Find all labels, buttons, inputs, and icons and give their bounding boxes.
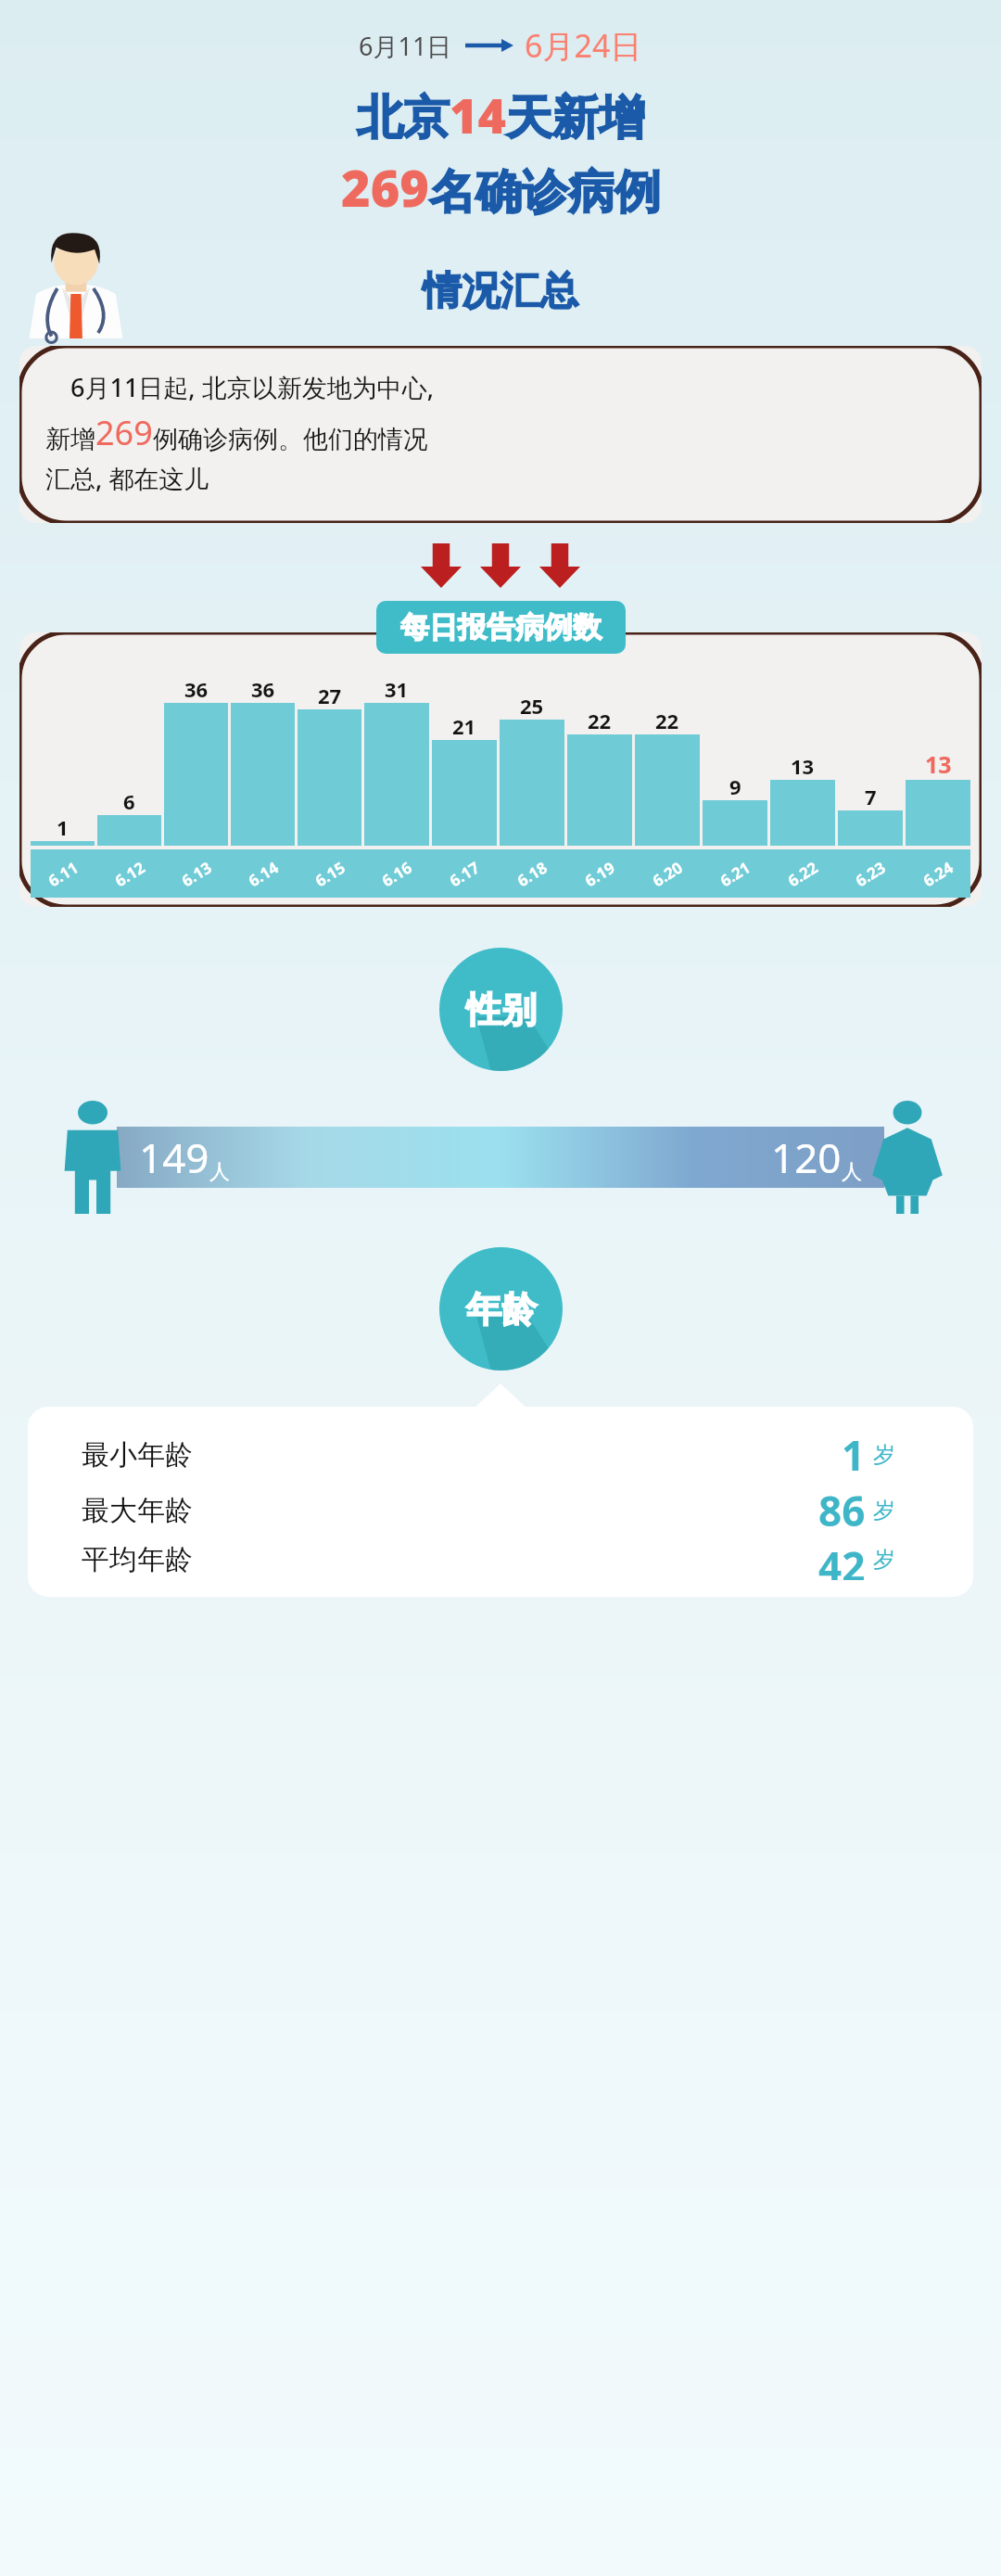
staticText: 人: [209, 1159, 230, 1185]
staticText: 新增: [45, 424, 95, 455]
button[interactable]: [31, 841, 95, 846]
staticText: 6.20: [648, 857, 686, 891]
staticText: 22: [588, 707, 612, 734]
staticText: 25: [520, 692, 544, 720]
staticText: 269: [95, 410, 153, 455]
button[interactable]: [364, 703, 429, 846]
button[interactable]: [567, 734, 632, 846]
staticText: 岁: [873, 1497, 895, 1524]
staticText: 36: [251, 675, 275, 703]
staticText: 9: [729, 772, 741, 800]
staticText: 1: [842, 1427, 866, 1483]
staticText: 6.21: [716, 857, 754, 891]
staticText: 27: [318, 682, 342, 709]
staticText: 14: [450, 82, 506, 147]
button[interactable]: [838, 810, 903, 846]
staticText: 22: [655, 707, 679, 734]
staticText: 每日报告病例数: [400, 609, 602, 645]
staticText: 13: [791, 752, 815, 780]
staticText: 最大年龄: [82, 1493, 193, 1528]
staticText: 6月11日起, 北京以新发地为中心,: [45, 370, 435, 404]
staticText: 1: [57, 813, 69, 841]
staticText: 6.13: [177, 857, 215, 891]
button[interactable]: [635, 734, 700, 846]
button[interactable]: [770, 780, 835, 846]
staticText: 6.16: [378, 857, 416, 891]
staticText: 汇总, 都在这儿: [45, 461, 209, 495]
staticText: 情况汇总: [423, 267, 578, 316]
staticText: 269: [341, 153, 429, 222]
staticText: 6.24: [919, 857, 957, 891]
button[interactable]: 性别: [439, 948, 563, 1071]
other: Male: [56, 1101, 130, 1214]
staticText: 7: [865, 783, 877, 810]
staticText: 6.15: [311, 857, 349, 891]
staticText: 名确诊病例: [429, 163, 661, 222]
staticText: 42: [818, 1538, 866, 1580]
staticText: 岁: [873, 1546, 895, 1574]
staticText: 天新增: [506, 89, 645, 147]
button[interactable]: [298, 709, 361, 846]
staticText: 120: [771, 1129, 842, 1185]
button[interactable]: [703, 800, 767, 846]
staticText: 21: [452, 712, 476, 740]
staticText: 最小年龄: [82, 1437, 193, 1473]
staticText: 北京: [357, 89, 450, 147]
staticText: 6.17: [445, 857, 483, 891]
staticText: 6.23: [851, 857, 889, 891]
staticText: 6月11日: [359, 29, 452, 63]
button[interactable]: 年龄: [439, 1247, 563, 1371]
staticText: 36: [184, 675, 209, 703]
staticText: 6.22: [784, 857, 822, 891]
staticText: 31: [385, 675, 409, 703]
staticText: 人: [842, 1159, 862, 1185]
staticText: 性别: [466, 988, 537, 1032]
staticText: 6.19: [581, 857, 619, 891]
staticText: 6月24日: [525, 24, 642, 67]
button[interactable]: 最小年龄: [28, 1407, 973, 1597]
button[interactable]: [97, 815, 161, 846]
staticText: 86: [818, 1483, 866, 1538]
other: Female: [868, 1101, 947, 1214]
staticText: 例确诊病例。他们的情况: [153, 424, 428, 455]
staticText: 6.18: [513, 857, 551, 891]
staticText: 6.12: [111, 857, 149, 891]
staticText: 岁: [873, 1441, 895, 1469]
staticText: 13: [925, 748, 952, 780]
button[interactable]: 每日报告病例数: [376, 601, 626, 654]
button[interactable]: 6月11日起, 北京以新发地为中心,: [19, 346, 982, 523]
staticText: 6: [123, 787, 135, 815]
button[interactable]: [164, 703, 228, 846]
staticText: 平均年龄: [82, 1542, 193, 1577]
staticText: 6.14: [244, 857, 282, 891]
staticText: 149: [139, 1129, 209, 1185]
staticText: 年龄: [466, 1287, 537, 1332]
staticText: 6.11: [44, 857, 82, 891]
